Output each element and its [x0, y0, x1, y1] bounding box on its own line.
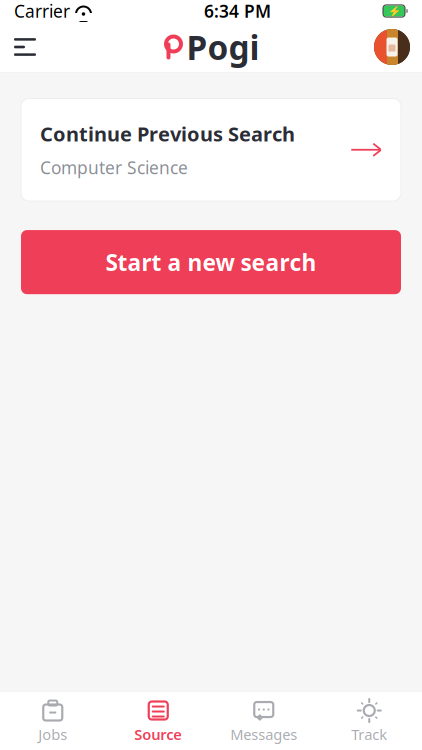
button[interactable]: Track	[316, 691, 422, 750]
staticText: Computer Science	[40, 156, 188, 179]
staticText: 6:34 PM	[204, 0, 271, 22]
staticText: ⚡	[387, 5, 400, 17]
staticText: Pogi	[186, 25, 259, 69]
staticText: Jobs	[38, 724, 67, 744]
staticText: Messages	[230, 724, 297, 744]
button[interactable]: Jobs	[0, 691, 105, 750]
button[interactable]: Messages	[211, 691, 316, 750]
button[interactable]: Continue Previous Search	[21, 98, 401, 201]
button[interactable]: Source	[105, 691, 211, 750]
staticText: Continue Previous Search	[40, 120, 295, 147]
button[interactable]: Menu	[0, 24, 54, 70]
staticText: Track	[351, 724, 387, 744]
staticText: Start a new search	[105, 247, 316, 277]
staticText: Source	[134, 724, 182, 744]
button[interactable]: Start a new search	[21, 230, 401, 294]
staticText: Carrier	[14, 0, 70, 22]
button[interactable]: Profile	[362, 23, 422, 71]
